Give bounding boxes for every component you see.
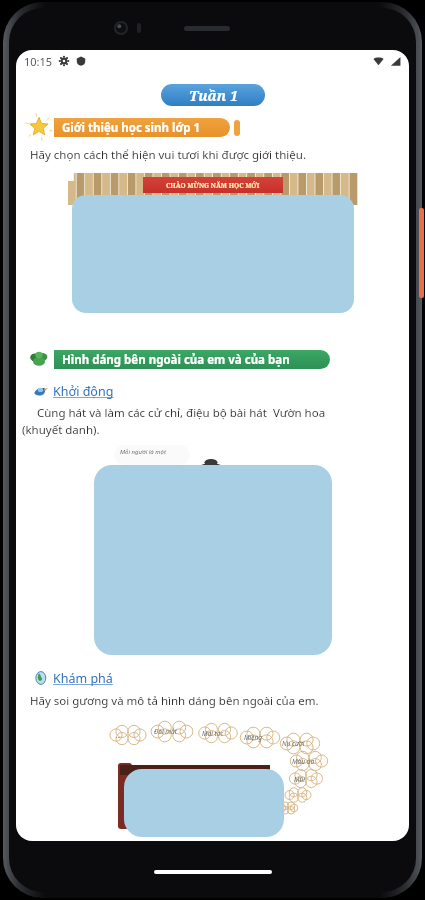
staticText: ...	[116, 731, 121, 740]
staticText: Mũi	[294, 775, 305, 784]
staticText: Giới thiệu học sinh lớp 1	[62, 120, 201, 136]
button[interactable]: Khám phá	[30, 667, 113, 689]
staticText: Màu da	[292, 757, 315, 766]
staticText: CHÀO MỪNG NĂM HỌC MỚI	[166, 181, 260, 190]
staticText: Nụ cười	[282, 739, 305, 748]
staticText: Tuần 1	[189, 86, 238, 105]
staticText: Miệng	[244, 733, 262, 742]
button[interactable]: Khởi động	[30, 380, 114, 402]
other: Power button	[419, 208, 424, 298]
staticText: Hình dáng bên ngoài của em và của bạn	[62, 352, 290, 368]
staticText: Khám phá	[53, 670, 113, 687]
staticText: Mỗi người là một	[120, 448, 166, 456]
staticText: Cùng hát và làm các cử chỉ, điệu bộ bài …	[22, 405, 399, 437]
staticText: 10:15	[24, 54, 53, 69]
button[interactable]: Hình dáng bên ngoài của em và của bạn	[40, 350, 330, 369]
button[interactable]: Giới thiệu học sinh lớp 1	[40, 118, 240, 137]
button[interactable]: Tuần 1	[161, 84, 265, 106]
staticText: Đôi mắt	[154, 727, 177, 736]
staticText: Khởi động	[53, 383, 114, 400]
staticText: Mái tóc	[202, 729, 224, 738]
staticText: Hãy chọn cách thể hiện vui tươi khi được…	[30, 147, 399, 163]
staticText: Hãy soi gương và mô tả hình dáng bên ngo…	[30, 693, 399, 709]
